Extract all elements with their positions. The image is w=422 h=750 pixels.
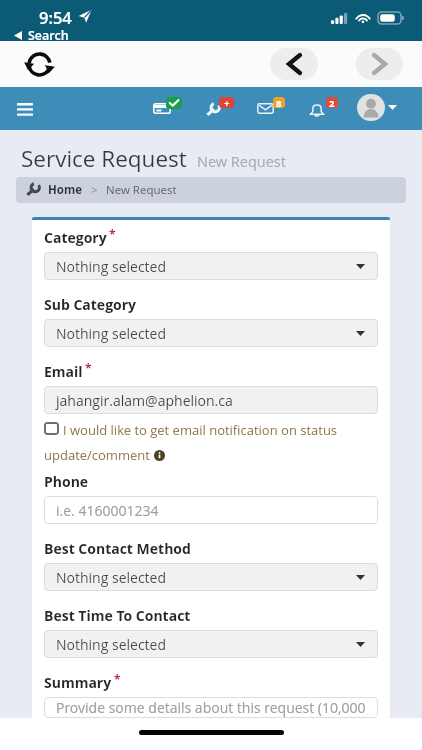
staticText: Service Request [21,143,187,174]
staticText: 2 [329,97,335,108]
button[interactable]: Forward [356,48,403,80]
button[interactable]: Provide some details about this request … [44,697,378,718]
staticText: Phone [44,472,89,490]
staticText: update/comment [44,446,150,464]
staticText: Home [48,182,83,198]
staticText: Email [44,362,83,380]
staticText: 9:54 [39,6,72,28]
staticText: New Request [106,182,177,198]
button[interactable]: New service request [200,95,236,123]
staticText: 8 [276,97,282,108]
button[interactable]: Reload [21,51,58,78]
staticText: New Request [197,152,286,172]
staticText: Best Time To Contact [44,606,191,624]
button[interactable]: I would like to get email notification o… [44,421,378,464]
staticText: Category [44,228,107,246]
staticText: * [114,671,121,687]
button[interactable]: Back [270,48,318,80]
staticText: Summary [44,673,112,691]
staticText: * [85,360,92,376]
staticText: + [224,97,230,108]
button[interactable]: Nothing selected [44,563,378,591]
staticText: Sub Category [44,295,137,313]
staticText: Nothing selected [56,257,166,276]
staticText: i.e. 4160001234 [56,501,159,520]
staticText: * [109,226,116,242]
button[interactable]: Notifications [305,95,341,123]
button[interactable]: Menu [12,96,38,122]
staticText: I would like to get email notification o… [63,421,338,439]
staticText: Nothing selected [56,635,166,654]
button[interactable]: Nothing selected [44,319,378,347]
button[interactable]: Nothing selected [44,252,378,280]
button[interactable]: Messages [252,95,288,123]
button[interactable]: Billing [148,95,184,123]
button[interactable]: Home [16,177,406,203]
staticText: Nothing selected [56,568,166,587]
button[interactable]: i.e. 4160001234 [44,496,378,524]
button[interactable]: jahangir.alam@aphelion.ca [44,386,378,414]
staticText: Nothing selected [56,324,166,343]
staticText: Search [28,27,69,44]
staticText: > [91,182,98,198]
button[interactable]: Nothing selected [44,630,378,658]
button[interactable]: Account [357,94,397,121]
staticText: Provide some details about this request … [56,698,366,717]
staticText: jahangir.alam@aphelion.ca [56,391,233,410]
staticText: Best Contact Method [44,539,191,557]
